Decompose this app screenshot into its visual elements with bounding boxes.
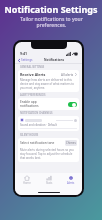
button[interactable]: Receive Alerts	[20, 72, 77, 77]
staticText: Alerts	[67, 181, 75, 185]
staticText: Notification Settings	[0, 3, 102, 15]
button[interactable]: Alerts	[60, 173, 82, 190]
staticText: Chimes	[66, 141, 76, 145]
staticText: Tailor notifications to your preferences…	[20, 16, 83, 29]
button[interactable]	[20, 118, 77, 122]
button[interactable]: Select notification tone	[20, 140, 77, 146]
button[interactable]: Settings	[17, 57, 34, 63]
staticText: Home	[23, 181, 31, 185]
staticText: SILENT HOURS	[20, 133, 39, 137]
staticText: ALERT PREFERENCES	[20, 93, 46, 97]
staticText: Settings	[21, 58, 33, 62]
staticText: Stats	[46, 181, 53, 185]
button[interactable]: Home	[15, 173, 38, 190]
staticText: All alerts	[61, 73, 74, 77]
staticText: Sound and vibration · Default	[20, 123, 57, 127]
staticText: Receive Alerts	[20, 72, 46, 77]
button[interactable]: Stats	[38, 173, 60, 190]
staticText: Manage how alerts are delivered to this …	[20, 78, 77, 90]
button[interactable]: Enable app notifications	[20, 100, 77, 108]
staticText: Notifications	[44, 58, 65, 62]
staticText: Enable app notifications	[20, 100, 68, 108]
staticText: NOTIFICATION CHANNELS	[20, 111, 53, 115]
staticText: 9:41	[20, 51, 28, 56]
staticText: Mute alerts during selected hours so you…	[20, 148, 77, 160]
staticText: Select notification tone	[20, 141, 55, 145]
staticText: GENERAL SETTINGS	[20, 65, 45, 69]
button[interactable]: Toggle notifications	[68, 102, 77, 107]
